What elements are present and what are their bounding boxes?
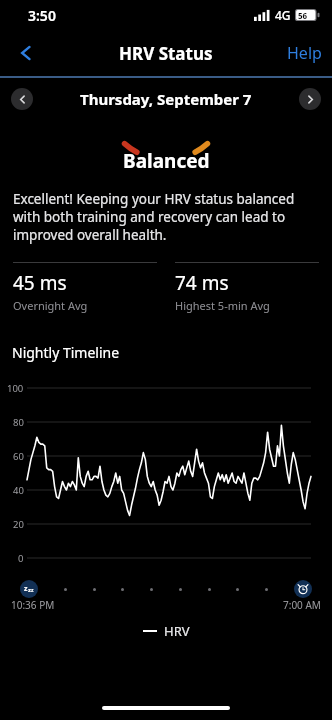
button[interactable]: 45 ms (13, 262, 157, 313)
staticText: 10:36 PM (11, 598, 55, 612)
staticText: 74 ms (175, 270, 229, 296)
staticText: z (31, 587, 34, 594)
staticText: Nightly Timeline (12, 343, 120, 362)
staticText: 80 (13, 416, 24, 428)
staticText: 45 ms (13, 270, 67, 296)
staticText: 60 (13, 450, 24, 462)
staticText: HRV (164, 622, 190, 640)
staticText: z (28, 586, 31, 594)
staticText: Balanced (123, 148, 210, 174)
button[interactable]: Help (287, 42, 322, 64)
staticText: Overnight Avg (13, 298, 88, 313)
staticText: Thursday, September 7 (80, 89, 252, 109)
staticText: 100 (7, 382, 24, 394)
staticText: 3:50 (28, 6, 56, 25)
staticText: 40 (13, 484, 24, 496)
staticText: Help (287, 42, 322, 64)
staticText: 20 (13, 518, 24, 530)
other: Wake time (294, 580, 312, 598)
staticText: Highest 5-min Avg (175, 298, 270, 313)
button[interactable]: 74 ms (175, 262, 319, 313)
staticText: HRV Status (119, 42, 213, 65)
staticText: z (24, 584, 28, 594)
button[interactable]: Previous day (11, 88, 33, 110)
staticText: Excellent! Keeping your HRV status balan… (13, 190, 319, 244)
staticText: 0 (18, 552, 24, 564)
staticText: 7:00 AM (283, 598, 321, 612)
button[interactable]: Next day (299, 88, 321, 110)
other: Sleep start (20, 580, 38, 598)
staticText: 4G (275, 7, 291, 23)
staticText: 56 (298, 10, 308, 21)
button[interactable]: Back (6, 33, 46, 73)
